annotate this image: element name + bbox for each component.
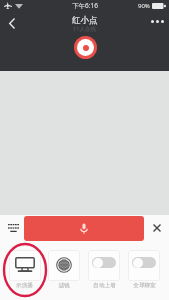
button[interactable]: Back — [3, 14, 21, 32]
staticText: 11人在线 — [73, 25, 97, 33]
staticText: 滤镜 — [58, 282, 70, 289]
button[interactable]: Close — [149, 220, 165, 236]
button[interactable]: Record — [74, 36, 97, 59]
button[interactable]: Hold to talk — [24, 216, 144, 241]
staticText: 红小点 — [72, 15, 98, 26]
button[interactable]: More options — [146, 12, 168, 30]
staticText: 自动上墙 — [93, 282, 116, 289]
button[interactable]: 示演播 — [5, 241, 44, 300]
staticText: 90% — [138, 2, 150, 10]
staticText: 下午6:16 — [72, 1, 98, 10]
button[interactable]: 全球聊室 — [124, 241, 164, 300]
staticText: 示演播 — [16, 282, 33, 289]
button[interactable]: Keyboard — [4, 219, 22, 237]
button[interactable]: 滤镜 — [44, 241, 84, 300]
button[interactable]: 自动上墙 — [84, 241, 124, 300]
staticText: 全球聊室 — [133, 282, 156, 289]
